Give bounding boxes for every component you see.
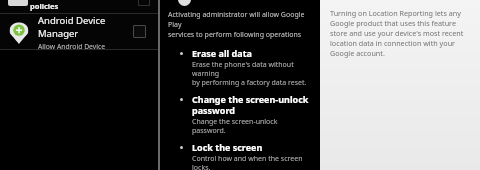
staticText: Allow Android Device Manager to lock or … bbox=[38, 42, 133, 49]
other: Android Device Manager bbox=[9, 20, 29, 44]
staticText: Change the screen-unlock password. bbox=[192, 117, 312, 135]
button[interactable]: Lock the screen bbox=[168, 141, 312, 170]
button[interactable]: Enable Android Device Manager bbox=[133, 25, 146, 38]
staticText: Control how and when the screen locks. bbox=[192, 154, 312, 170]
button[interactable]: policies bbox=[0, 0, 158, 13]
button[interactable]: Change the screen-unlock password bbox=[168, 93, 312, 135]
staticText: Erase the phone's data without warning b… bbox=[192, 60, 312, 87]
staticText: Change the screen-unlock password bbox=[192, 93, 309, 116]
staticText: Android Device Manager bbox=[38, 14, 133, 40]
button[interactable]: Android Device Manager bbox=[0, 14, 158, 49]
staticText: Lock the screen bbox=[192, 141, 263, 153]
staticText: Erase all data bbox=[192, 47, 252, 59]
staticText: policies bbox=[30, 1, 59, 11]
staticText: Turning on Location Reporting lets any G… bbox=[330, 8, 472, 58]
staticText: Activating administrator will allow Goog… bbox=[168, 10, 312, 40]
button[interactable]: Erase all data bbox=[168, 47, 312, 87]
